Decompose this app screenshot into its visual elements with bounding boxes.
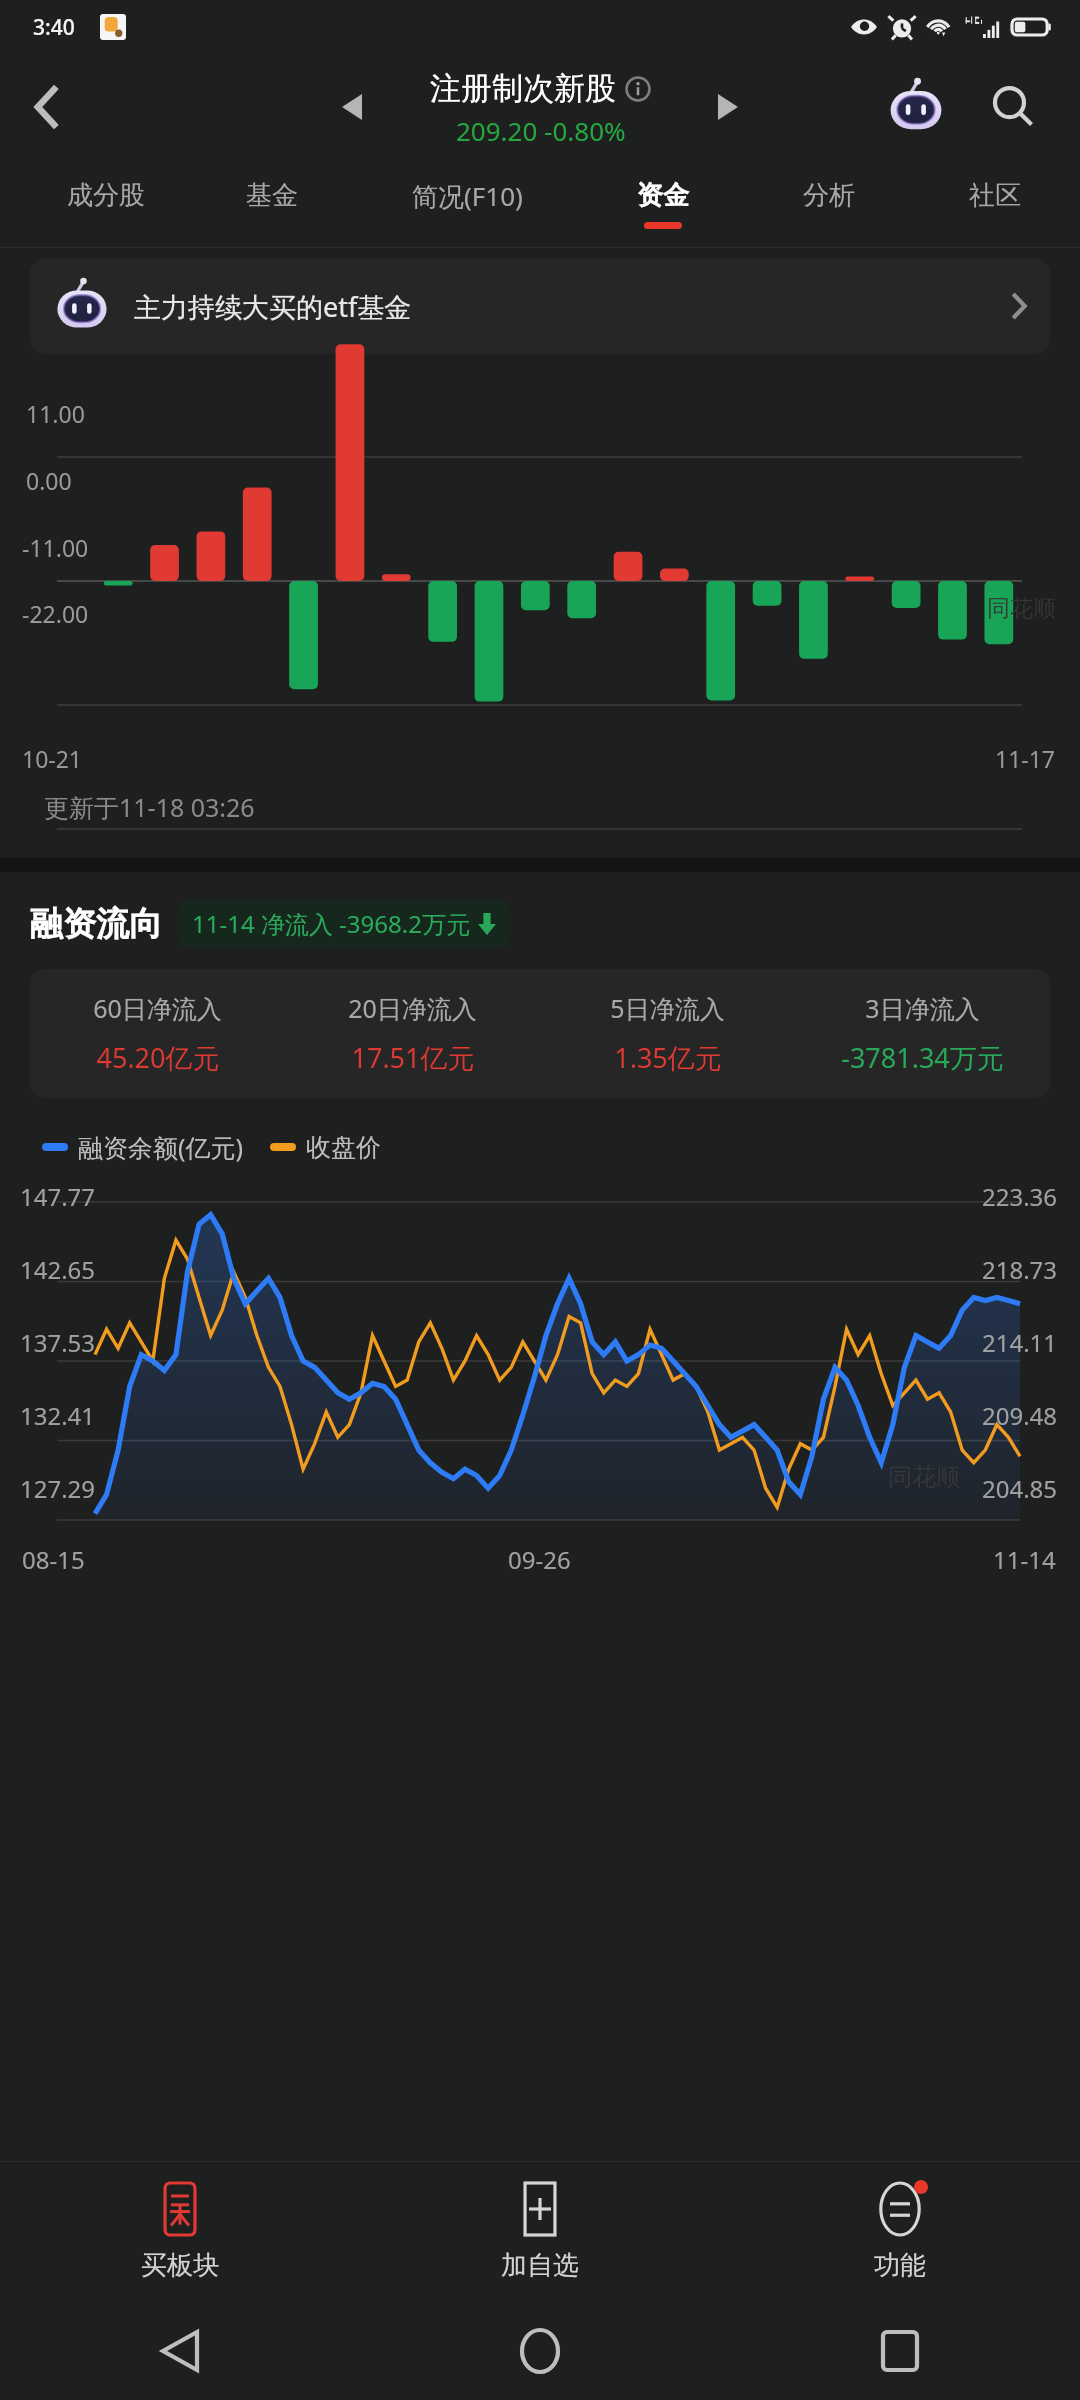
staticText: 218.73 xyxy=(982,1253,1058,1286)
staticText: 简况(F10) xyxy=(412,178,523,214)
button[interactable]: 社区 xyxy=(912,160,1078,248)
button[interactable]: 买板块 xyxy=(0,2162,360,2302)
button[interactable]: 加自选 xyxy=(360,2162,720,2302)
staticText: 更新于11-18 03:26 xyxy=(44,790,255,824)
staticText: 注册制次新股 xyxy=(430,69,616,108)
staticText: 11-14 xyxy=(993,1543,1056,1576)
staticText: 11.00 xyxy=(26,398,85,429)
staticText: 基金 xyxy=(246,179,298,212)
staticText: 11-17 xyxy=(995,743,1056,774)
staticText: 10-21 xyxy=(22,743,83,774)
button[interactable]: Search xyxy=(974,68,1052,146)
staticText: 3:40 xyxy=(33,13,75,42)
staticText: 11-14 净流入 -3968.2万元 xyxy=(192,907,470,940)
staticText: 209.48 xyxy=(982,1399,1058,1432)
staticText: 20日净流入 xyxy=(348,991,477,1025)
staticText: 142.65 xyxy=(20,1253,96,1286)
staticText: 132.41 xyxy=(20,1399,96,1432)
staticText: 成分股 xyxy=(67,179,145,212)
staticText: 社区 xyxy=(969,179,1021,212)
button[interactable]: Next xyxy=(700,79,756,135)
button[interactable]: Previous xyxy=(324,79,380,135)
button[interactable]: Home xyxy=(360,2302,720,2400)
staticText: 17.51亿元 xyxy=(351,1039,475,1076)
staticText: 204.85 xyxy=(982,1472,1058,1505)
staticText: 3日净流入 xyxy=(865,991,980,1025)
button[interactable]: 分析 xyxy=(746,160,912,248)
staticText: 214.11 xyxy=(982,1326,1058,1359)
staticText: 同花顺 xyxy=(987,594,1056,623)
staticText: 5日净流入 xyxy=(610,991,725,1025)
staticText: 223.36 xyxy=(982,1180,1058,1213)
staticText: 收盘价 xyxy=(306,1132,381,1163)
button[interactable]: Recent apps xyxy=(720,2302,1080,2400)
staticText: 1.35亿元 xyxy=(614,1039,722,1076)
staticText: 0.00 xyxy=(26,465,72,496)
staticText: 加自选 xyxy=(501,2249,579,2282)
staticText: 137.53 xyxy=(20,1326,96,1359)
button[interactable]: Back xyxy=(0,2302,360,2400)
button[interactable]: 简况(F10) xyxy=(355,160,580,248)
staticText: 60日净流入 xyxy=(93,991,222,1025)
button[interactable]: 资金 xyxy=(580,160,746,248)
staticText: 买板块 xyxy=(141,2249,219,2282)
staticText: 08-15 xyxy=(22,1543,85,1576)
button[interactable]: Back xyxy=(0,59,96,155)
button[interactable]: 3日净流入 xyxy=(795,991,1050,1076)
staticText: 融资余额(亿元) xyxy=(78,1130,244,1164)
button[interactable]: 20日净流入 xyxy=(285,991,540,1076)
button[interactable]: 60日净流入 xyxy=(30,991,285,1076)
staticText: 同花顺 xyxy=(888,1462,960,1492)
staticText: 功能 xyxy=(874,2249,926,2282)
staticText: 资金 xyxy=(637,179,689,212)
button[interactable]: 基金 xyxy=(189,160,355,248)
staticText: 融资流向 xyxy=(30,903,162,945)
staticText: -11.00 xyxy=(22,532,89,563)
button[interactable]: 5日净流入 xyxy=(540,991,795,1076)
button[interactable]: 功能 xyxy=(720,2162,1080,2302)
staticText: 209.20 -0.80% xyxy=(456,113,626,148)
staticText: 分析 xyxy=(803,179,855,212)
button[interactable]: AI assistant xyxy=(880,71,952,143)
button[interactable]: Info xyxy=(625,76,651,102)
staticText: 09-26 xyxy=(508,1543,571,1576)
staticText: 主力持续大买的etf基金 xyxy=(134,288,412,325)
staticText: 147.77 xyxy=(20,1180,96,1213)
button[interactable]: 成分股 xyxy=(22,160,189,248)
staticText: -3781.34万元 xyxy=(841,1039,1004,1076)
staticText: 127.29 xyxy=(20,1472,96,1505)
button[interactable]: 主力持续大买的etf基金 xyxy=(30,258,1050,354)
staticText: -22.00 xyxy=(22,598,89,629)
staticText: 45.20亿元 xyxy=(96,1039,220,1076)
